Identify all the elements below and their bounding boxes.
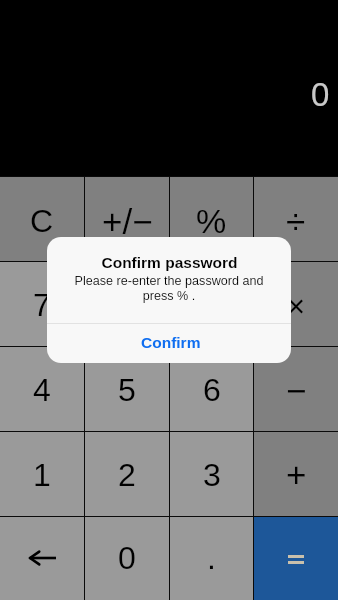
- staticText: 3: [203, 457, 221, 493]
- button[interactable]: 6: [170, 347, 253, 431]
- staticText: 5: [118, 372, 136, 408]
- staticText: ÷: [286, 202, 306, 241]
- staticText: +/−: [102, 202, 153, 241]
- button[interactable]: Backspace: [0, 517, 84, 600]
- staticText: +: [286, 455, 307, 494]
- button[interactable]: 3: [170, 432, 253, 516]
- staticText: %: [196, 202, 227, 240]
- staticText: 2: [118, 457, 136, 493]
- button[interactable]: 7: [0, 262, 84, 346]
- button[interactable]: %: [170, 177, 253, 261]
- button[interactable]: C: [0, 177, 84, 261]
- staticText: ×: [287, 289, 306, 324]
- button[interactable]: Equals: [254, 517, 338, 600]
- button[interactable]: ×: [254, 262, 338, 346]
- staticText: Confirm password: [101, 254, 238, 271]
- staticText: −: [286, 371, 307, 410]
- button[interactable]: 4: [0, 347, 84, 431]
- button[interactable]: +/−: [85, 177, 169, 261]
- button[interactable]: 9: [170, 262, 253, 346]
- button[interactable]: ÷: [254, 177, 338, 261]
- button[interactable]: 2: [85, 432, 169, 516]
- button[interactable]: Confirm: [47, 324, 291, 363]
- staticText: 1: [33, 457, 51, 493]
- staticText: 4: [33, 372, 51, 408]
- staticText: 6: [203, 372, 221, 408]
- button[interactable]: 0: [85, 517, 169, 600]
- button[interactable]: 8: [85, 262, 169, 346]
- staticText: C: [30, 203, 54, 239]
- staticText: .: [207, 540, 216, 576]
- button[interactable]: 5: [85, 347, 169, 431]
- button[interactable]: −: [254, 347, 338, 431]
- button[interactable]: 1: [0, 432, 84, 516]
- staticText: 0: [118, 540, 136, 576]
- staticText: Please re-enter the password and press %…: [63, 274, 275, 303]
- staticText: 7: [33, 287, 51, 323]
- staticText: Confirm: [141, 334, 201, 351]
- button[interactable]: .: [170, 517, 253, 600]
- button[interactable]: +: [254, 432, 338, 516]
- staticText: 0: [311, 76, 330, 113]
